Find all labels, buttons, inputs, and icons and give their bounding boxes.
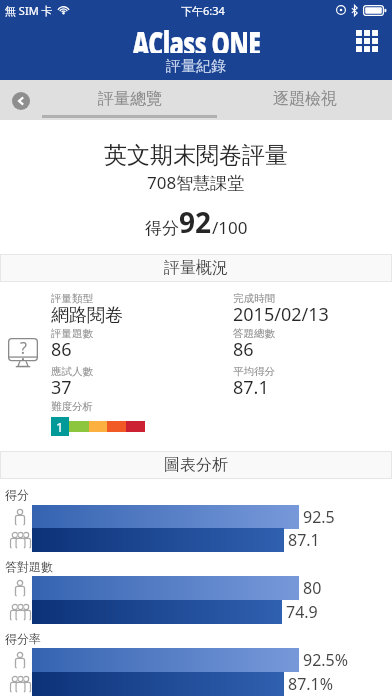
staticText: 87.1 — [233, 375, 269, 400]
staticText: 得分率 — [5, 631, 41, 646]
staticText: 74.9 — [286, 601, 318, 623]
staticText: 86 — [233, 337, 254, 362]
staticText: 得分 — [5, 487, 29, 502]
staticText: 下午6:34 — [181, 3, 225, 18]
staticText: 得分 — [145, 218, 179, 239]
staticText: AClass ONE — [132, 21, 261, 53]
staticText: 92.5% — [303, 649, 349, 671]
staticText: 92 — [179, 203, 212, 241]
staticText: ? — [20, 337, 27, 359]
staticText: 完成時間 — [233, 292, 275, 305]
staticText: 37 — [51, 375, 72, 400]
staticText: 評量類型 — [51, 292, 93, 305]
staticText: 英文期末閱卷評量 — [104, 141, 288, 170]
staticText: 708智慧課堂 — [147, 171, 245, 194]
staticText: 2015/02/13 — [233, 302, 329, 327]
staticText: 答題總數 — [233, 327, 275, 340]
button[interactable]: Apps menu — [353, 27, 381, 55]
button[interactable]: 逐題檢視 — [217, 80, 392, 120]
staticText: 答對題數 — [5, 559, 53, 574]
staticText: 87.1% — [288, 673, 334, 695]
staticText: 評量概況 — [164, 258, 228, 278]
staticText: 92.5 — [303, 506, 335, 528]
staticText: 逐題檢視 — [273, 89, 337, 109]
staticText: 評量題數 — [51, 327, 93, 340]
staticText: 80 — [303, 577, 322, 599]
staticText: 1 — [56, 418, 64, 436]
staticText: 圖表分析 — [164, 455, 228, 475]
staticText: 無 SIM 卡 — [5, 3, 53, 18]
staticText: 評量總覽 — [98, 89, 162, 109]
staticText: 網路閱卷 — [51, 304, 123, 327]
staticText: /100 — [212, 216, 248, 239]
button[interactable]: Back — [4, 84, 38, 118]
staticText: 平均得分 — [233, 365, 275, 378]
staticText: 86 — [51, 337, 72, 362]
staticText: 難度分析 — [51, 400, 93, 413]
staticText: 應試人數 — [51, 365, 93, 378]
button[interactable]: 評量總覽 — [42, 80, 217, 120]
staticText: 87.1 — [288, 529, 320, 551]
staticText: 評量紀錄 — [166, 57, 226, 76]
